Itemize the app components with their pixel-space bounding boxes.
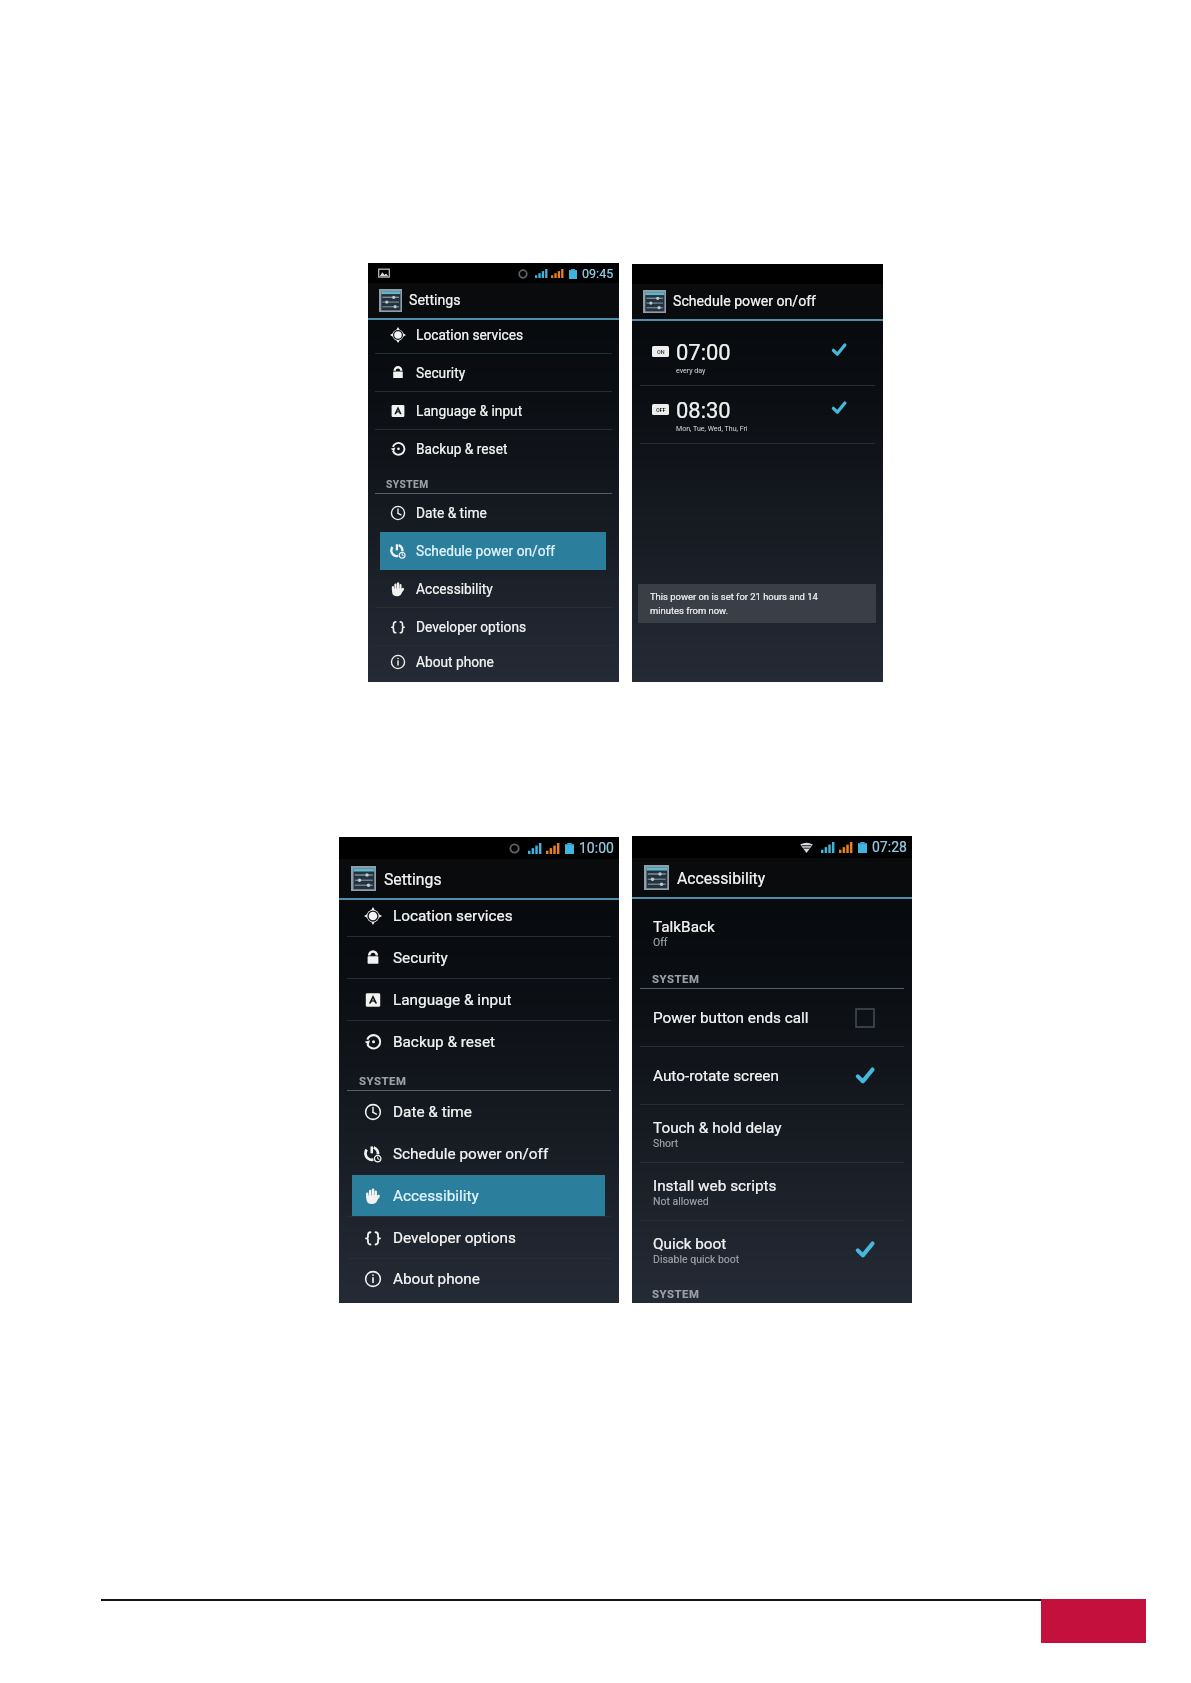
staticText: SYSTEM [359, 1074, 407, 1087]
button[interactable]: About phone [339, 1259, 619, 1298]
button[interactable]: Quick boot [632, 1221, 912, 1278]
staticText: Not allowed [653, 1195, 709, 1207]
staticText: Developer options [416, 619, 527, 635]
staticText: 07:28 [872, 839, 907, 855]
staticText: Touch & hold delay [653, 1119, 782, 1137]
button[interactable]: Toggle schedule 07:00 [832, 343, 846, 357]
staticText: Location services [393, 907, 513, 925]
staticText: This power on is set for 21 hours and 14… [650, 591, 818, 616]
staticText: Accessibility [393, 1187, 479, 1205]
button[interactable]: Developer options [368, 608, 619, 646]
staticText: Auto-rotate screen [653, 1067, 779, 1085]
button[interactable]: Language & input [339, 979, 619, 1021]
staticText: Off [653, 936, 668, 948]
staticText: Schedule power on/off [393, 1145, 549, 1163]
staticText: SYSTEM [386, 479, 429, 491]
staticText: Date & time [416, 505, 487, 521]
button[interactable]: OFF [632, 386, 883, 443]
button[interactable]: Language & input [368, 392, 619, 430]
staticText: 08:30 [676, 398, 731, 424]
button[interactable]: About phone [368, 646, 619, 678]
button[interactable]: Security [368, 354, 619, 392]
button[interactable]: TalkBack [632, 906, 912, 959]
staticText: Settings [384, 870, 442, 888]
staticText: Power button ends call [653, 1009, 809, 1027]
button[interactable]: Power button ends call [856, 1009, 874, 1027]
staticText: TalkBack [653, 918, 715, 936]
staticText: About phone [393, 1270, 480, 1288]
button[interactable]: Power button ends call [632, 989, 912, 1046]
staticText: Developer options [393, 1229, 516, 1247]
staticText: OFF [656, 407, 666, 413]
button[interactable]: Location services [368, 316, 619, 354]
staticText: Quick boot [653, 1235, 727, 1253]
staticText: About phone [416, 654, 494, 670]
staticText: Mon, Tue, Wed, Thu, Fri [676, 424, 748, 432]
staticText: Accessibility [416, 581, 493, 597]
staticText: 09:45 [582, 266, 614, 281]
button[interactable]: Backup & reset [339, 1021, 619, 1063]
button[interactable]: ON [632, 328, 883, 385]
button[interactable]: Auto-rotate screen [632, 1047, 912, 1104]
button[interactable]: Install web scripts [632, 1163, 912, 1220]
staticText: Schedule power on/off [416, 543, 556, 559]
staticText: ON [657, 349, 665, 355]
staticText: 07:00 [676, 340, 731, 366]
staticText: Disable quick boot [653, 1253, 740, 1265]
staticText: Short [653, 1137, 679, 1149]
button[interactable]: Schedule power on/off [368, 532, 619, 570]
staticText: Schedule power on/off [673, 293, 817, 310]
staticText: Language & input [393, 991, 512, 1009]
button[interactable]: Auto-rotate screen [856, 1067, 874, 1085]
button[interactable]: Security [339, 937, 619, 979]
staticText: Backup & reset [393, 1033, 496, 1051]
staticText: Location services [416, 327, 524, 343]
button[interactable]: Location services [339, 895, 619, 937]
button[interactable]: Developer options [339, 1217, 619, 1259]
staticText: 10:00 [579, 840, 614, 856]
button[interactable]: Touch & hold delay [632, 1105, 912, 1162]
staticText: every day [676, 366, 706, 374]
staticText: SYSTEM [652, 1287, 700, 1300]
button[interactable]: Date & time [339, 1091, 619, 1133]
staticText: SYSTEM [652, 972, 700, 985]
button[interactable]: Backup & reset [368, 430, 619, 468]
staticText: Settings [409, 292, 461, 309]
button[interactable]: Date & time [368, 494, 619, 532]
button[interactable]: Quick boot [856, 1241, 874, 1259]
button[interactable]: Accessibility [339, 1175, 619, 1217]
staticText: Language & input [416, 403, 523, 419]
staticText: Accessibility [677, 869, 766, 887]
staticText: Date & time [393, 1103, 472, 1121]
button[interactable]: Toggle schedule 08:30 [832, 401, 846, 415]
staticText: Backup & reset [416, 441, 508, 457]
staticText: Install web scripts [653, 1177, 777, 1195]
button[interactable]: Schedule power on/off [339, 1133, 619, 1175]
button[interactable]: Accessibility [368, 570, 619, 608]
staticText: Security [393, 949, 448, 967]
staticText: Security [416, 365, 466, 381]
